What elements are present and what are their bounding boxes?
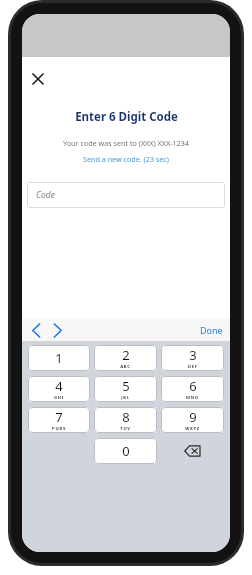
staticText: 0	[122, 442, 130, 460]
button[interactable]: 0	[94, 438, 157, 464]
button[interactable]: 2	[94, 345, 157, 371]
staticText: Send a new code. (23 sec)	[83, 154, 169, 164]
button[interactable]: 8	[94, 407, 157, 433]
staticText: 3	[189, 346, 197, 364]
staticText: Code	[36, 189, 55, 201]
button[interactable]: 3	[161, 345, 224, 371]
staticText: 9	[189, 408, 197, 426]
staticText: JKL	[121, 395, 130, 401]
staticText: TUV	[120, 426, 131, 432]
button[interactable]: Close	[25, 66, 51, 92]
staticText: 6	[189, 377, 197, 395]
button[interactable]: Next field	[49, 319, 67, 341]
button[interactable]: 6	[161, 376, 224, 402]
staticText: 5	[122, 377, 130, 395]
staticText: MNO	[186, 395, 199, 401]
button[interactable]: 9	[161, 407, 224, 433]
button[interactable]: 5	[94, 376, 157, 402]
staticText: DEF	[188, 364, 198, 370]
staticText: WXYZ	[185, 426, 200, 432]
staticText: 7	[55, 408, 63, 426]
staticText: Your code was sent to (XXX) XXX-1234	[63, 138, 189, 148]
staticText: 4	[55, 377, 63, 395]
button[interactable]: Send a new code. (23 sec)	[83, 154, 169, 164]
staticText: ABC	[120, 364, 131, 370]
staticText: Done	[200, 324, 223, 336]
button[interactable]: Previous field	[27, 319, 45, 341]
button[interactable]: 4	[28, 376, 90, 402]
button[interactable]: Backspace	[161, 438, 224, 464]
button[interactable]: Code	[27, 182, 225, 208]
staticText: 2	[122, 346, 130, 364]
staticText: 1	[55, 349, 63, 367]
button[interactable]: 1	[28, 345, 90, 371]
staticText: 8	[122, 408, 130, 426]
button[interactable]: 7	[28, 407, 90, 433]
staticText: Enter 6 Digit Code	[75, 109, 178, 125]
staticText: PQRS	[52, 426, 66, 432]
button[interactable]: Done	[198, 321, 225, 339]
staticText: GHI	[54, 395, 64, 401]
